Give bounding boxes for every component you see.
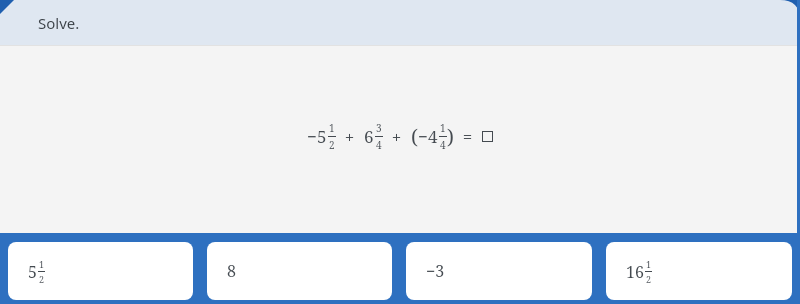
staticText: + (383, 125, 411, 148)
button[interactable]: 5 (8, 242, 193, 300)
staticText: 2 (646, 273, 652, 285)
button[interactable]: 16 (606, 242, 792, 300)
staticText: 2 (329, 138, 335, 152)
staticText: ) (447, 123, 454, 150)
staticText: − (418, 125, 428, 148)
staticText: + (336, 125, 364, 148)
button[interactable]: −3 (406, 242, 592, 300)
staticText: 1 (440, 121, 446, 135)
staticText: 1 (646, 258, 652, 270)
staticText: Solve. (38, 13, 80, 33)
staticText: 6 (364, 125, 374, 148)
staticText: − (307, 125, 317, 148)
staticText: 4 (428, 125, 438, 148)
staticText: −3 (426, 260, 445, 282)
staticText: 1 (39, 258, 45, 270)
staticText: 4 (376, 138, 382, 152)
staticText: 1 (329, 121, 335, 135)
staticText: 3 (376, 121, 382, 135)
staticText: 8 (227, 260, 236, 282)
staticText: 16 (626, 261, 644, 283)
staticText: 2 (39, 273, 45, 285)
staticText: = (454, 125, 482, 148)
staticText: 5 (28, 261, 37, 283)
staticText: 5 (317, 125, 327, 148)
staticText: ( (411, 123, 418, 150)
button[interactable]: 8 (207, 242, 392, 300)
staticText: 4 (440, 138, 446, 152)
